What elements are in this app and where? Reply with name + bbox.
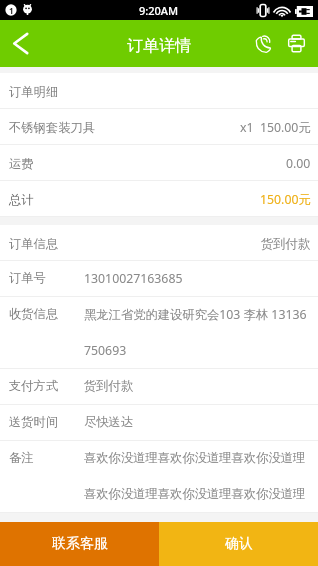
staticText: 13010027163685 [84, 270, 183, 287]
staticText: 喜欢你没道理喜欢你没道理喜欢你没道理 [84, 486, 306, 501]
staticText: 9:20AM [139, 3, 179, 18]
button[interactable]: 确认 [159, 522, 318, 566]
button[interactable]: 总计 [0, 181, 318, 217]
button[interactable]: Back [0, 20, 40, 67]
staticText: 不锈钢套装刀具 [9, 120, 96, 135]
button[interactable]: Print [280, 20, 312, 67]
button[interactable]: 备注 [0, 441, 318, 513]
staticText: 订单详情 [127, 36, 191, 56]
staticText: 750693 [84, 342, 127, 359]
staticText: 货到付款 [261, 236, 311, 251]
staticText: x1 150.00元 [240, 119, 311, 136]
staticText: 尽快送达 [84, 414, 134, 429]
staticText: 订单明细 [9, 84, 59, 99]
staticText: 确认 [225, 535, 253, 553]
staticText: 货到付款 [84, 378, 134, 393]
staticText: 送货时间 [9, 414, 59, 429]
button[interactable]: 送货时间 [0, 405, 318, 441]
staticText: 联系客服 [52, 535, 108, 553]
button[interactable]: 不锈钢套装刀具 [0, 109, 318, 145]
button[interactable]: 订单号 [0, 261, 318, 297]
button[interactable]: 联系客服 [0, 522, 159, 566]
button[interactable]: 收货信息 [0, 297, 318, 369]
button[interactable]: Call [248, 20, 280, 67]
staticText: 备注 [9, 450, 34, 465]
button[interactable]: 订单信息 [0, 225, 318, 261]
button[interactable]: 运费 [0, 145, 318, 181]
button[interactable]: 支付方式 [0, 369, 318, 405]
staticText: 总计 [9, 192, 34, 207]
staticText: 收货信息 [9, 306, 59, 321]
staticText: 订单信息 [9, 236, 59, 251]
staticText: 黑龙江省党的建设研究会103 李林 13136 [84, 306, 307, 323]
staticText: 喜欢你没道理喜欢你没道理喜欢你没道理 [84, 450, 306, 465]
staticText: 支付方式 [9, 378, 59, 393]
staticText: 150.00元 [260, 191, 311, 208]
staticText: 运费 [9, 156, 34, 171]
staticText: 订单号 [9, 270, 46, 285]
staticText: 1 [9, 5, 14, 16]
button[interactable]: 订单明细 [0, 73, 318, 109]
staticText: 0.00 [286, 155, 311, 172]
